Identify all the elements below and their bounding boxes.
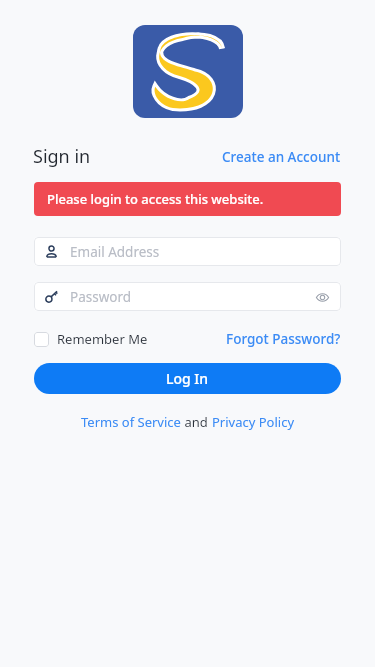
staticText: Forgot Password? xyxy=(226,330,341,348)
button[interactable]: Forgot Password? xyxy=(226,328,341,350)
button[interactable]: Email Address xyxy=(34,237,341,266)
staticText: Sign in xyxy=(33,144,91,169)
staticText: Email Address xyxy=(70,243,160,261)
button[interactable]: Create an Account xyxy=(221,146,342,168)
staticText: Terms of Service xyxy=(81,413,181,431)
staticText: and xyxy=(181,413,212,431)
button[interactable]: Log In xyxy=(34,363,341,394)
button[interactable]: Privacy Policy xyxy=(212,411,295,433)
staticText: Please login to access this website. xyxy=(47,190,264,208)
staticText: Privacy Policy xyxy=(212,413,295,431)
staticText: Password xyxy=(70,288,132,306)
button[interactable]: Show password xyxy=(309,284,335,310)
button[interactable]: Remember Me xyxy=(34,328,148,350)
staticText: Log In xyxy=(166,369,209,388)
staticText: Remember Me xyxy=(57,330,148,348)
button[interactable]: Terms of Service xyxy=(81,411,181,433)
staticText: Create an Account xyxy=(222,148,341,166)
button[interactable]: Password xyxy=(34,282,341,311)
other: App logo xyxy=(133,25,243,118)
